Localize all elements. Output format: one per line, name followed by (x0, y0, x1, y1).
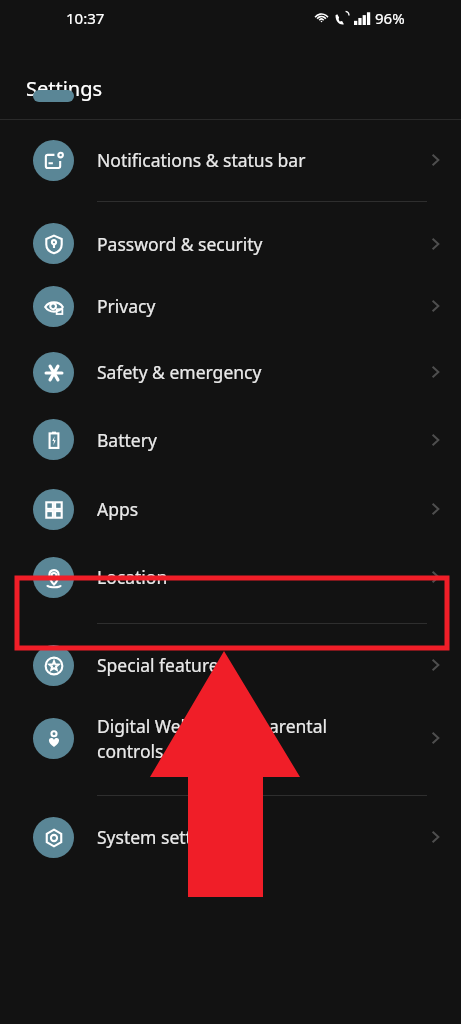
staticText: 10:37 (66, 8, 105, 28)
staticText: Privacy (97, 294, 423, 318)
staticText: System settings (97, 825, 423, 849)
button[interactable]: Apps (0, 474, 461, 544)
staticText: Digital Wellbeing & parental controls (97, 714, 423, 763)
button[interactable]: Location (0, 544, 461, 610)
staticText: Battery (97, 428, 423, 452)
button[interactable]: Special features (0, 636, 461, 694)
staticText: Password & security (97, 232, 423, 256)
staticText: 96% (375, 8, 405, 28)
staticText: Special features (97, 653, 423, 677)
button[interactable]: Digital Wellbeing & parental controls (0, 694, 461, 782)
button[interactable]: Privacy (0, 273, 461, 339)
staticText: Notifications & status bar (97, 148, 423, 172)
button[interactable]: Password & security (0, 214, 461, 273)
button[interactable]: Battery (0, 405, 461, 474)
staticText: Settings (26, 75, 103, 102)
button[interactable]: Safety & emergency (0, 339, 461, 405)
button[interactable]: System settings (0, 808, 461, 866)
button[interactable]: Notifications & status bar (0, 132, 461, 188)
staticText: Apps (97, 497, 423, 521)
staticText: Safety & emergency (97, 360, 423, 384)
staticText: Location (97, 565, 423, 589)
